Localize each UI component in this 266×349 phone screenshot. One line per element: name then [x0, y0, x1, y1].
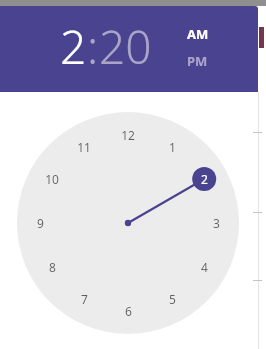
button[interactable]: 2 — [60, 15, 87, 78]
staticText: 10 — [45, 171, 59, 187]
button[interactable]: 1 — [159, 134, 185, 160]
button[interactable]: 5 — [159, 286, 185, 312]
staticText: AM — [187, 25, 209, 43]
staticText: 12 — [121, 127, 135, 143]
staticText: 7 — [81, 291, 88, 307]
button[interactable]: PM — [185, 51, 210, 71]
button[interactable]: 11 — [71, 134, 97, 160]
button[interactable]: 6 — [115, 298, 141, 324]
staticText: 5 — [169, 291, 176, 307]
staticText: 1 — [169, 139, 176, 155]
staticText: 2 — [201, 171, 208, 187]
button[interactable]: 9 — [27, 210, 53, 236]
staticText: PM — [187, 52, 208, 70]
staticText: 6 — [125, 303, 132, 319]
button[interactable]: 2 — [191, 166, 217, 192]
button[interactable]: AM — [185, 24, 211, 44]
button[interactable]: 8 — [39, 254, 65, 280]
staticText: 11 — [77, 139, 91, 155]
staticText: 9 — [37, 215, 44, 231]
button[interactable]: 20 — [99, 15, 152, 78]
staticText: 8 — [49, 259, 56, 275]
staticText: 3 — [213, 215, 220, 231]
staticText: 20 — [99, 15, 152, 78]
staticText: 2 — [60, 15, 87, 78]
button[interactable]: 12 — [115, 122, 141, 148]
button[interactable]: 3 — [203, 210, 229, 236]
button[interactable]: 7 — [71, 286, 97, 312]
staticText: 4 — [201, 259, 208, 275]
staticText: : — [87, 15, 99, 78]
button[interactable]: 4 — [191, 254, 217, 280]
button[interactable]: 10 — [39, 166, 65, 192]
